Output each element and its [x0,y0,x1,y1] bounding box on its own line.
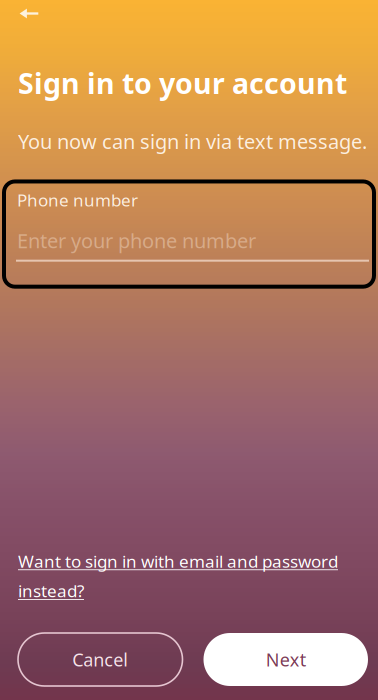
staticText: Enter your phone number [17,227,256,254]
staticText: Want to sign in with email and password [18,550,338,572]
button[interactable]: Next [203,633,368,686]
staticText: Cancel [72,647,128,671]
staticText: Next [266,647,306,671]
staticText: You now can sign in via text message. [18,128,367,154]
staticText: instead? [18,579,84,602]
button[interactable]: Cancel [18,633,182,686]
button[interactable]: Back [0,0,53,30]
staticText: Phone number [17,188,138,211]
button[interactable]: Want to sign in with email and password [0,550,378,602]
staticText: Sign in to your account [18,64,347,102]
